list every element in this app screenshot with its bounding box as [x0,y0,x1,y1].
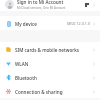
button[interactable]: Scan QR code [84,2,90,8]
staticText: My device [15,21,67,27]
staticText: WLAN [15,61,92,67]
staticText: Connection & sharing [15,89,92,95]
button[interactable]: WLAN [0,56,100,70]
staticText: Mi Cloud services, One Mi Account [17,6,66,10]
button[interactable]: My device [0,16,100,30]
staticText: MIUI 12.0.1.0 [67,21,91,26]
button[interactable]: SIM cards & mobile networks [0,42,100,56]
staticText: Sign in to Mi Account [17,0,64,5]
button[interactable]: Bluetooth [0,70,100,84]
staticText: Bluetooth [15,75,92,81]
button[interactable]: Sign in to Mi Account [0,0,100,11]
button[interactable]: Connection & sharing [0,84,100,98]
staticText: SIM cards & mobile networks [15,47,92,53]
